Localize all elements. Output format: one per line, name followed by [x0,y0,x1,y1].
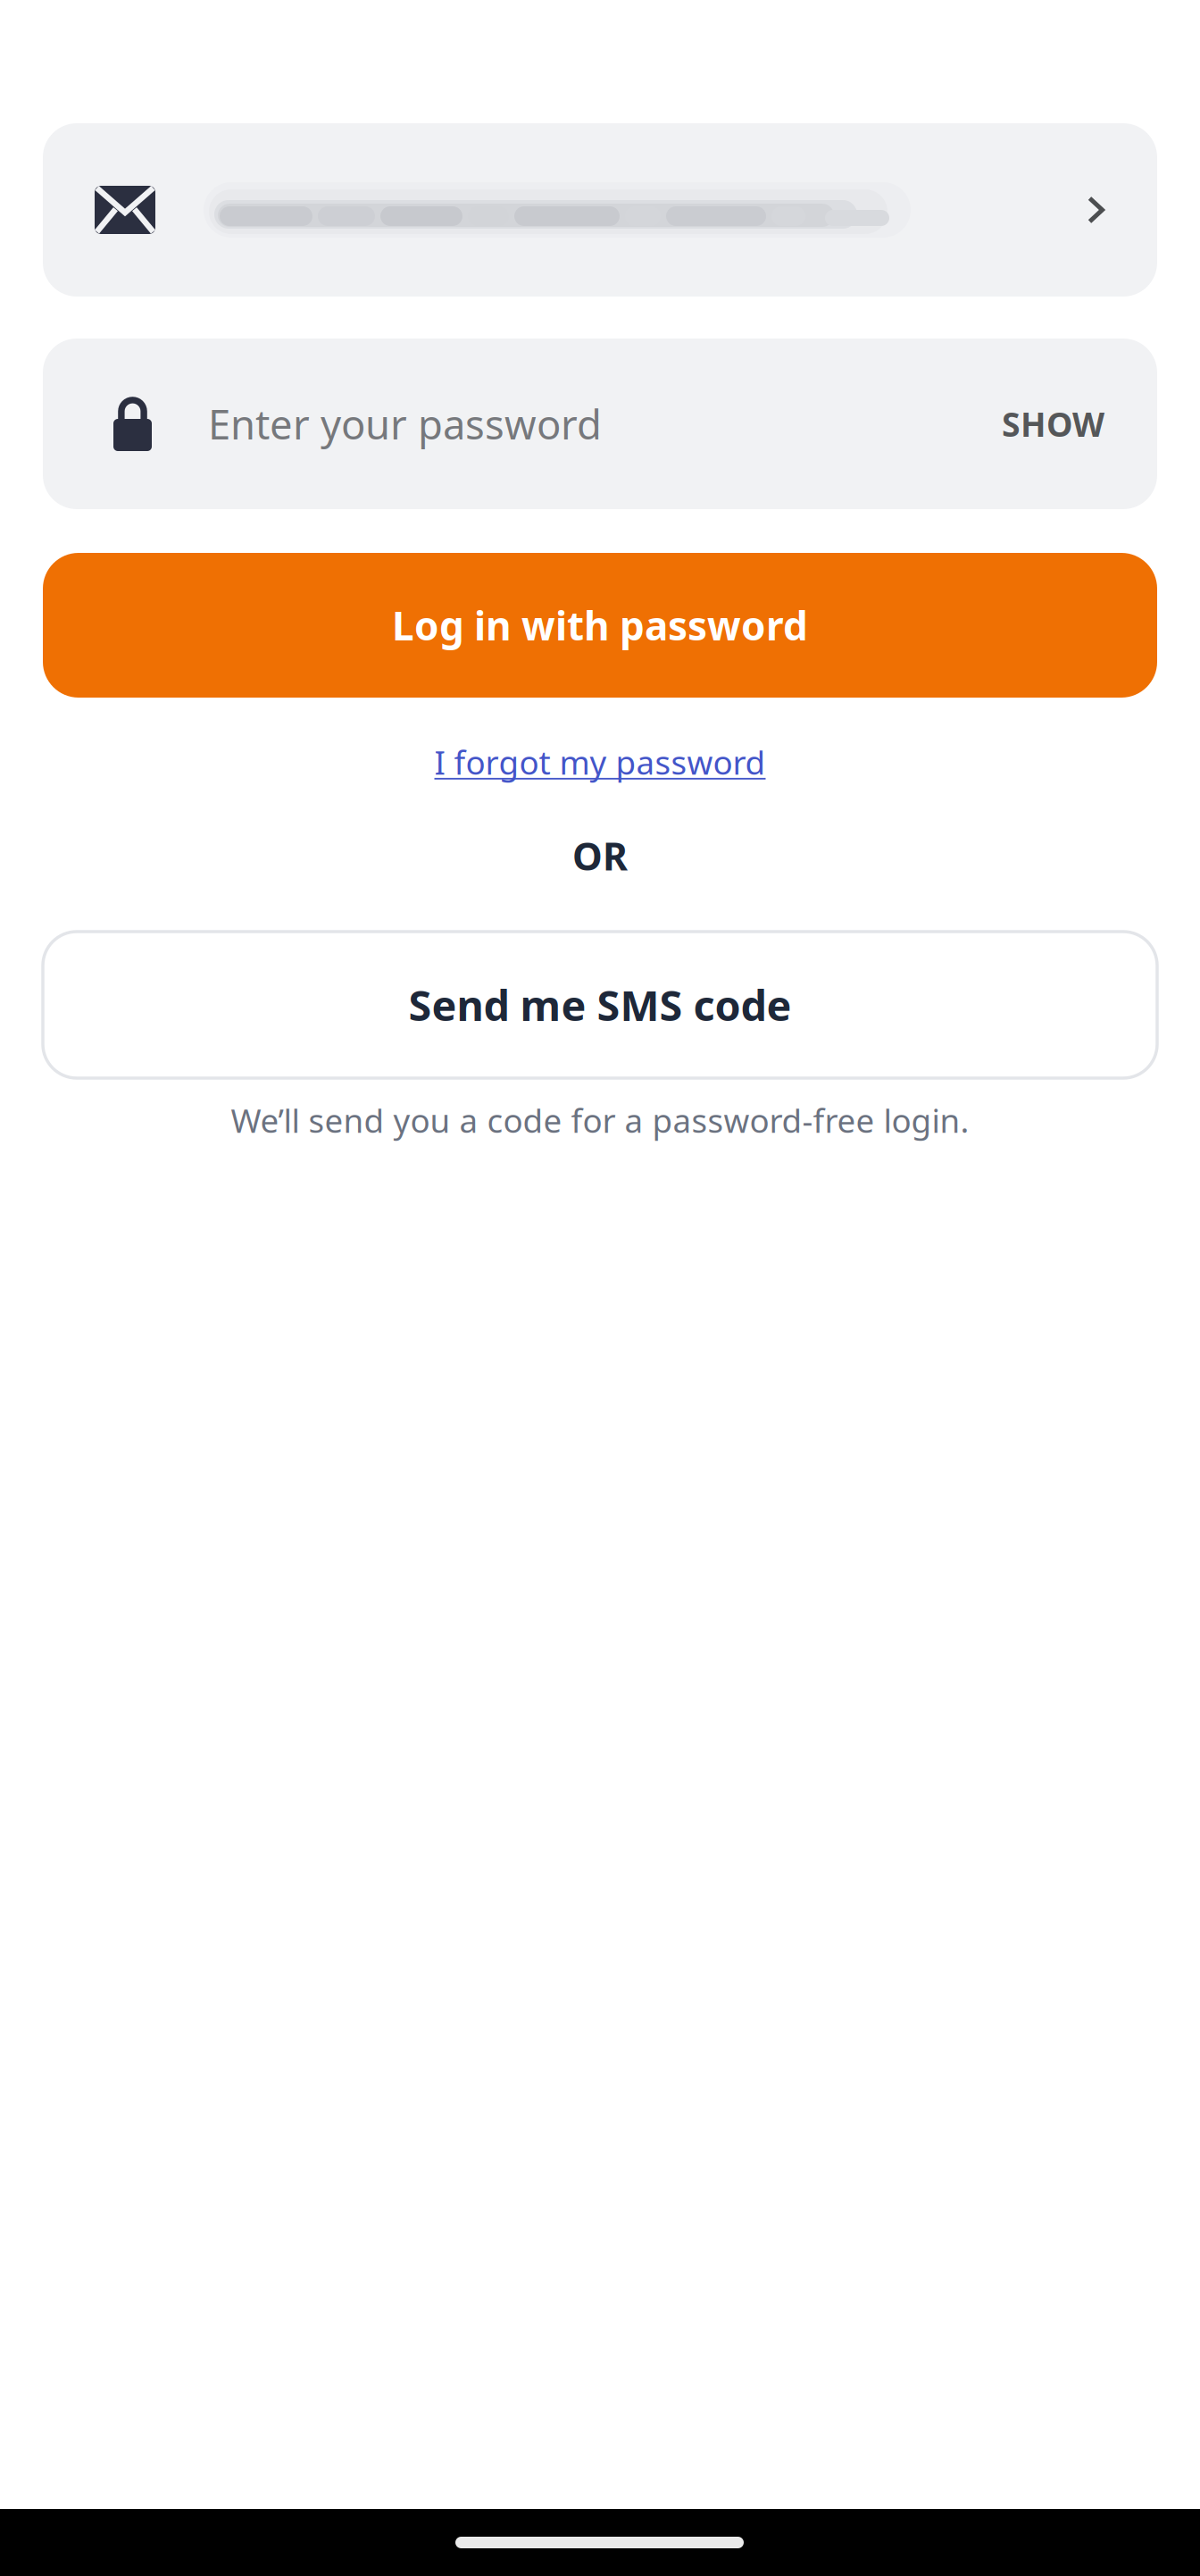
button[interactable]: I forgot my password [43,742,1157,782]
staticText: Log in with password [392,599,808,651]
staticText: SHOW [1002,402,1104,446]
staticText: Enter your password [208,397,602,451]
staticText: I forgot my password [434,740,766,784]
button[interactable]: Enter your password [43,339,962,509]
button[interactable]: Log in with password [43,553,1157,698]
button[interactable]: SHOW [966,370,1157,478]
button[interactable]: Send me SMS code [43,932,1157,1078]
staticText: Send me SMS code [408,977,792,1033]
staticText: We’ll send you a code for a password-fre… [231,1098,969,1142]
staticText: OR [572,830,628,881]
button[interactable]: Change e-mail address [43,123,1157,297]
